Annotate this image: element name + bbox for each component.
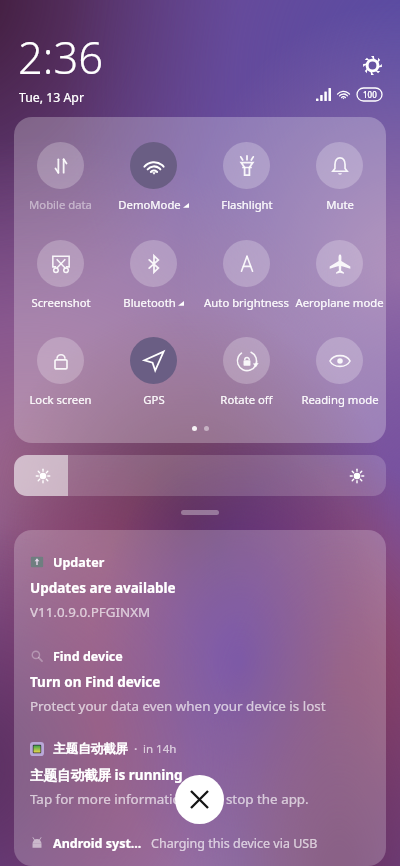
- staticText: GPS: [143, 392, 165, 407]
- staticText: Android syst...: [53, 835, 142, 852]
- staticText: Charging this device via USB: [151, 835, 318, 852]
- button[interactable]: Rotate off: [200, 312, 293, 407]
- staticText: ·: [134, 741, 138, 757]
- staticText: Mute: [326, 197, 354, 212]
- button[interactable]: Mobile data: [14, 117, 107, 212]
- button[interactable]: Reading mode: [293, 312, 386, 407]
- staticText: 100: [363, 89, 377, 100]
- button[interactable]: DemoMode: [107, 117, 200, 212]
- staticText: Aeroplane mode: [295, 295, 384, 310]
- staticText: Updater: [53, 554, 105, 570]
- button[interactable]: Brightness: [14, 455, 386, 496]
- staticText: Tap for more information or to stop the …: [30, 790, 309, 808]
- staticText: Turn on Find device: [30, 673, 161, 691]
- staticText: Bluetooth: [123, 295, 176, 310]
- button[interactable]: Flashlight: [200, 117, 293, 212]
- button[interactable]: Bluetooth: [107, 215, 200, 310]
- staticText: Mobile data: [29, 197, 92, 212]
- staticText: V11.0.9.0.PFGINXM: [30, 603, 151, 621]
- staticText: 主题自动截屏 is running: [30, 766, 183, 784]
- staticText: Auto brightness: [204, 295, 289, 310]
- staticText: DemoMode: [118, 197, 181, 212]
- staticText: Protect your data even when your device …: [30, 697, 326, 715]
- button[interactable]: Screenshot: [14, 215, 107, 310]
- staticText: Reading mode: [301, 392, 379, 407]
- button[interactable]: Auto brightness: [200, 215, 293, 310]
- staticText: Updates are available: [30, 579, 176, 597]
- button[interactable]: Updater: [30, 554, 386, 624]
- staticText: in 14h: [143, 741, 177, 757]
- button[interactable]: Close notifications: [175, 775, 224, 824]
- staticText: Rotate off: [220, 392, 273, 407]
- staticText: Tue, 13 Apr: [19, 89, 85, 106]
- button[interactable]: Settings: [360, 53, 384, 77]
- staticText: Find device: [53, 648, 123, 664]
- button[interactable]: GPS: [107, 312, 200, 407]
- button[interactable]: Mute: [293, 117, 386, 212]
- staticText: Flashlight: [221, 197, 273, 212]
- staticText: Screenshot: [31, 295, 91, 310]
- staticText: Lock screen: [29, 392, 92, 407]
- button[interactable]: Lock screen: [14, 312, 107, 407]
- staticText: 主题自动截屏: [53, 741, 128, 757]
- staticText: 2:36: [18, 27, 104, 86]
- button[interactable]: Android syst...: [30, 832, 386, 854]
- button[interactable]: Aeroplane mode: [293, 215, 386, 310]
- button[interactable]: Find device: [30, 648, 386, 718]
- button[interactable]: 主题自动截屏: [30, 741, 386, 811]
